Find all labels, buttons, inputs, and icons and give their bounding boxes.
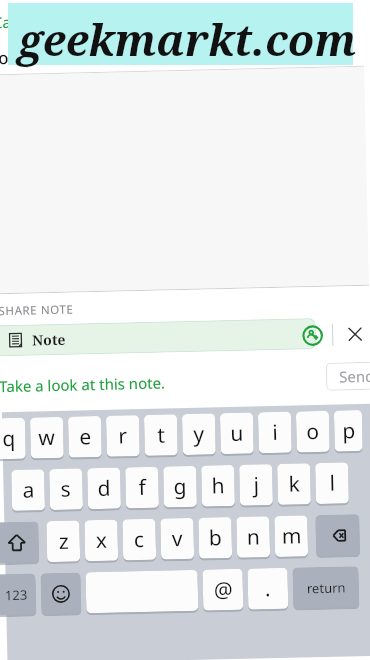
staticText: SHARE NOTE (0, 301, 74, 319)
button[interactable]: Key (0, 573, 36, 615)
button[interactable]: d (87, 467, 121, 509)
staticText: Enter name or email (32, 42, 196, 68)
staticText: return (307, 578, 346, 597)
button[interactable]: q (0, 418, 26, 459)
button[interactable]: Send (326, 361, 370, 391)
staticText: i (272, 418, 279, 447)
staticText: g (173, 472, 187, 501)
button[interactable]: Key (40, 572, 81, 614)
staticText: o (306, 417, 320, 446)
staticText: a (22, 475, 35, 505)
button[interactable]: Key (0, 521, 39, 563)
staticText: Share Note (137, 0, 238, 26)
button[interactable]: h (201, 465, 235, 507)
button[interactable]: i (258, 412, 292, 453)
staticText: Cancel (0, 11, 40, 32)
button[interactable]: p (334, 410, 363, 452)
button[interactable]: c (122, 519, 156, 560)
staticText: u (230, 419, 244, 448)
button[interactable]: y (182, 413, 216, 455)
button[interactable]: a (11, 469, 45, 511)
staticText: x (95, 526, 108, 555)
staticText: k (288, 469, 301, 499)
button[interactable]: Add people (299, 322, 325, 348)
button[interactable]: . (247, 568, 288, 610)
button[interactable]: b (198, 517, 232, 559)
button[interactable]: m (274, 515, 308, 557)
staticText: . (265, 574, 271, 603)
button[interactable]: w (30, 417, 64, 458)
staticText: m (281, 521, 302, 551)
button[interactable]: x (84, 520, 118, 561)
staticText: b (208, 523, 222, 552)
button[interactable]: @ (202, 569, 243, 611)
button[interactable]: r (106, 415, 140, 457)
staticText: Note (32, 330, 66, 349)
staticText: r (118, 421, 128, 450)
button[interactable]: l (315, 462, 349, 504)
button[interactable]: Cancel (0, 5, 50, 38)
button[interactable]: o (296, 411, 330, 452)
staticText: e (79, 422, 92, 451)
button[interactable]: t (144, 414, 178, 456)
button[interactable]: g (163, 466, 197, 507)
button[interactable]: s (49, 468, 83, 510)
staticText: p (342, 416, 356, 445)
button[interactable]: Take a look at this note. (0, 372, 165, 396)
staticText: Send (339, 366, 370, 386)
staticText: l (329, 469, 336, 498)
button[interactable]: v (160, 518, 194, 560)
staticText: 123 (5, 586, 28, 604)
staticText: y (193, 420, 205, 449)
staticText: geekmarkt.com (12, 10, 362, 69)
button[interactable]: Note (0, 318, 316, 356)
staticText: n (246, 522, 260, 552)
staticText: c (133, 525, 145, 554)
button[interactable]: Close (342, 321, 368, 347)
button[interactable]: f (125, 467, 159, 508)
button[interactable]: n (236, 516, 270, 558)
button[interactable]: k (277, 463, 311, 505)
staticText: d (97, 474, 111, 503)
staticText: @ (214, 575, 233, 604)
button[interactable]: e (68, 416, 102, 458)
button[interactable] (85, 570, 198, 613)
staticText: t (157, 420, 166, 450)
staticText: z (58, 527, 69, 556)
staticText: h (211, 471, 225, 500)
button[interactable]: u (220, 412, 254, 454)
staticText: f (138, 473, 147, 502)
button[interactable]: To: (0, 32, 364, 74)
staticText: To: (0, 46, 14, 69)
staticText: v (171, 524, 183, 553)
button[interactable]: Key (315, 514, 360, 556)
staticText: j (253, 470, 260, 499)
button[interactable]: Key (292, 566, 359, 609)
button[interactable]: j (239, 464, 273, 506)
staticText: w (38, 423, 56, 452)
staticText: s (60, 475, 72, 504)
button[interactable]: z (46, 520, 80, 562)
staticText: q (2, 424, 16, 453)
